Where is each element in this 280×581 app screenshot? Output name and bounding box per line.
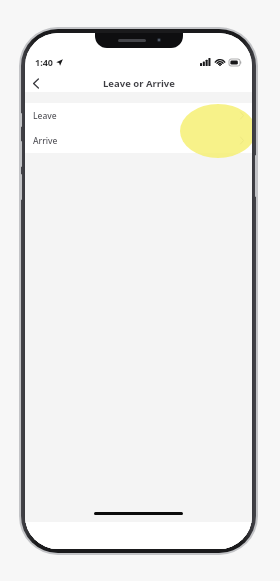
staticText: Leave or Arrive bbox=[103, 77, 175, 90]
staticText: Leave bbox=[33, 110, 57, 122]
staticText: 1:40 bbox=[35, 56, 53, 68]
staticText: Arrive bbox=[33, 135, 58, 147]
button[interactable]: Arrive bbox=[25, 128, 252, 153]
button[interactable]: Leave bbox=[25, 103, 252, 128]
button[interactable]: Back bbox=[25, 74, 47, 92]
